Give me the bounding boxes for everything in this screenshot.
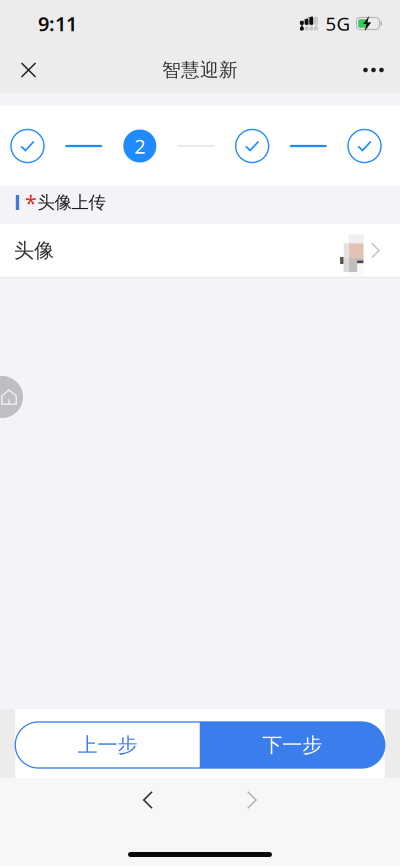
button[interactable]: More options — [351, 47, 396, 93]
button[interactable]: Close — [6, 47, 51, 93]
staticText: 智慧迎新 — [162, 58, 238, 81]
button[interactable]: 上一步 — [15, 722, 200, 768]
staticText: * — [25, 188, 37, 217]
staticText: 2 — [134, 133, 145, 159]
staticText: 上一步 — [77, 733, 137, 757]
button[interactable]: 下一步 — [200, 722, 385, 768]
staticText: 下一步 — [262, 733, 322, 757]
staticText: 头像上传 — [37, 192, 105, 213]
staticText: 头像 — [14, 238, 54, 263]
button[interactable]: Home — [0, 376, 23, 418]
staticText: 5G — [325, 11, 350, 36]
staticText: 9:11 — [38, 10, 77, 37]
button[interactable]: 头像 — [0, 224, 400, 278]
button[interactable]: Forward — [222, 782, 282, 818]
button[interactable]: Back — [118, 782, 178, 818]
